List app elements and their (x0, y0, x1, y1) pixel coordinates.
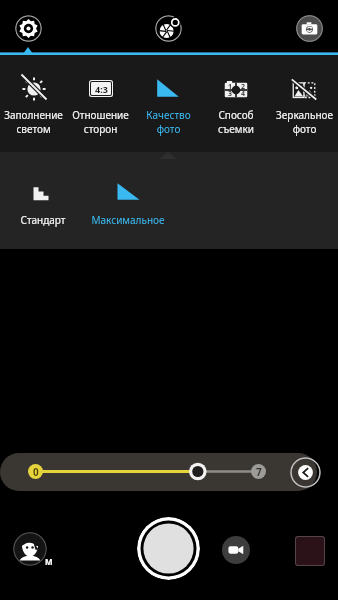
staticText: Отношение сторон (72, 108, 129, 136)
staticText: Заполнение светом (4, 108, 63, 136)
button[interactable]: Shooting mode (155, 15, 182, 42)
staticText: Способ съемки (218, 108, 254, 136)
button[interactable]: Максимальное (86, 152, 170, 249)
button[interactable]: Зеркальное фото (270, 55, 338, 152)
staticText: 4:3 (95, 83, 108, 95)
button[interactable]: Collapse zoom (290, 457, 321, 488)
button[interactable]: 4:3 (67, 55, 134, 152)
staticText: Стандарт (20, 213, 66, 227)
staticText: 4 (241, 89, 246, 99)
button[interactable]: Качество фото (134, 55, 202, 152)
button[interactable]: 1 (202, 55, 270, 152)
button[interactable]: Стандарт (15, 152, 71, 249)
staticText: M (45, 556, 53, 567)
button[interactable]: Beauty mode (13, 532, 47, 566)
button[interactable] (0, 453, 338, 491)
button[interactable]: Record video (222, 536, 250, 564)
staticText: Максимальное (91, 213, 165, 227)
staticText: Зеркальное фото (276, 108, 333, 136)
button[interactable]: Заполнение светом (0, 55, 67, 152)
staticText: Качество фото (146, 108, 191, 136)
staticText: 3 (228, 89, 233, 99)
button[interactable]: Camera settings (15, 15, 42, 42)
staticText: 0 (33, 465, 39, 479)
staticText: 2 (241, 82, 246, 92)
staticText: 1 (228, 82, 233, 92)
button[interactable]: Switch camera (296, 15, 323, 42)
button[interactable]: Take photo (137, 517, 200, 580)
staticText: 7 (256, 465, 262, 479)
